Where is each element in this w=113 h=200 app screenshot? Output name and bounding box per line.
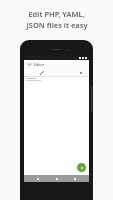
staticText: Edit PHP, YAML, bbox=[28, 9, 85, 19]
button[interactable]: Edit bbox=[39, 70, 45, 76]
button[interactable]: Recents bbox=[71, 175, 79, 182]
staticText: Editor bbox=[34, 62, 45, 67]
button[interactable]: Back bbox=[34, 175, 42, 182]
button[interactable]: Open navigation menu bbox=[27, 62, 32, 67]
button[interactable]: More options bbox=[78, 70, 84, 76]
button[interactable]: Add new file bbox=[77, 163, 86, 172]
staticText: JSON files it easy bbox=[26, 20, 88, 30]
button[interactable]: Home bbox=[53, 175, 61, 182]
